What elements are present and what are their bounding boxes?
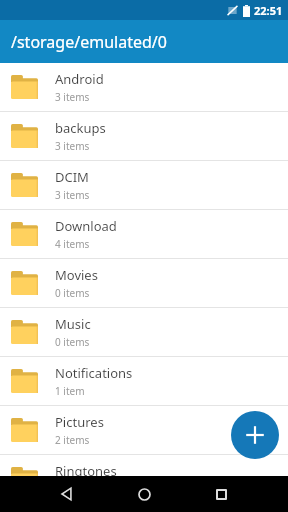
staticText: 3 items	[55, 188, 90, 202]
staticText: /storage/emulated/0	[11, 31, 167, 53]
button[interactable]: Download	[0, 210, 288, 258]
staticText: 3 items	[55, 139, 90, 153]
button[interactable]: Add	[231, 411, 279, 459]
button[interactable]: Music	[0, 308, 288, 356]
staticText: 0 items	[55, 286, 90, 300]
button[interactable]: Ringtones	[0, 455, 288, 503]
staticText: 2 items	[55, 433, 90, 447]
button[interactable]: DCIM	[0, 161, 288, 209]
staticText: Notifications	[55, 364, 133, 382]
staticText: 4 items	[55, 237, 90, 251]
staticText: DCIM	[55, 168, 89, 186]
staticText: Android	[55, 70, 104, 88]
button[interactable]: Movies	[0, 259, 288, 307]
staticText: Ringtones	[55, 462, 117, 480]
staticText: backups	[55, 119, 106, 137]
staticText: Music	[55, 315, 91, 333]
staticText: 1 item	[55, 384, 85, 398]
staticText: Download	[55, 217, 117, 235]
staticText: 3 items	[55, 90, 90, 104]
staticText: 0 items	[55, 335, 90, 349]
button[interactable]: backups	[0, 112, 288, 160]
button[interactable]: Notifications	[0, 357, 288, 405]
button[interactable]: Recent apps	[206, 479, 236, 509]
staticText: 22:51	[254, 3, 283, 18]
button[interactable]: Android	[0, 63, 288, 111]
button[interactable]: Pictures	[0, 406, 288, 454]
staticText: Pictures	[55, 413, 104, 431]
button[interactable]: Home	[129, 479, 159, 509]
staticText: 0 items	[55, 482, 90, 496]
button[interactable]: Back	[52, 479, 82, 509]
staticText: Movies	[55, 266, 98, 284]
